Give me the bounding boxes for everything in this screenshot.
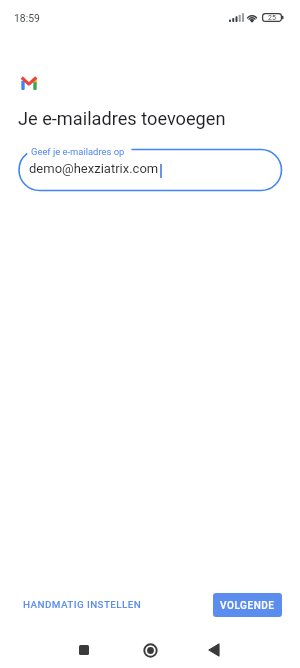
button[interactable]: HANDMATIG INSTELLEN <box>13 592 152 618</box>
staticText: Je e-mailadres toevoegen <box>18 108 226 129</box>
staticText: 18:59 <box>14 12 40 24</box>
button[interactable]: VOLGENDE <box>213 593 282 617</box>
staticText: VOLGENDE <box>220 600 275 612</box>
staticText: demo@hexziatrix.com <box>29 161 159 176</box>
button[interactable]: Recent apps <box>66 632 102 668</box>
staticText: HANDMATIG INSTELLEN <box>23 599 142 611</box>
staticText: Geef je e-mailadres op <box>31 146 125 157</box>
button[interactable]: Home <box>132 632 168 668</box>
button[interactable]: Back <box>196 632 232 668</box>
staticText: 25 <box>268 14 276 22</box>
